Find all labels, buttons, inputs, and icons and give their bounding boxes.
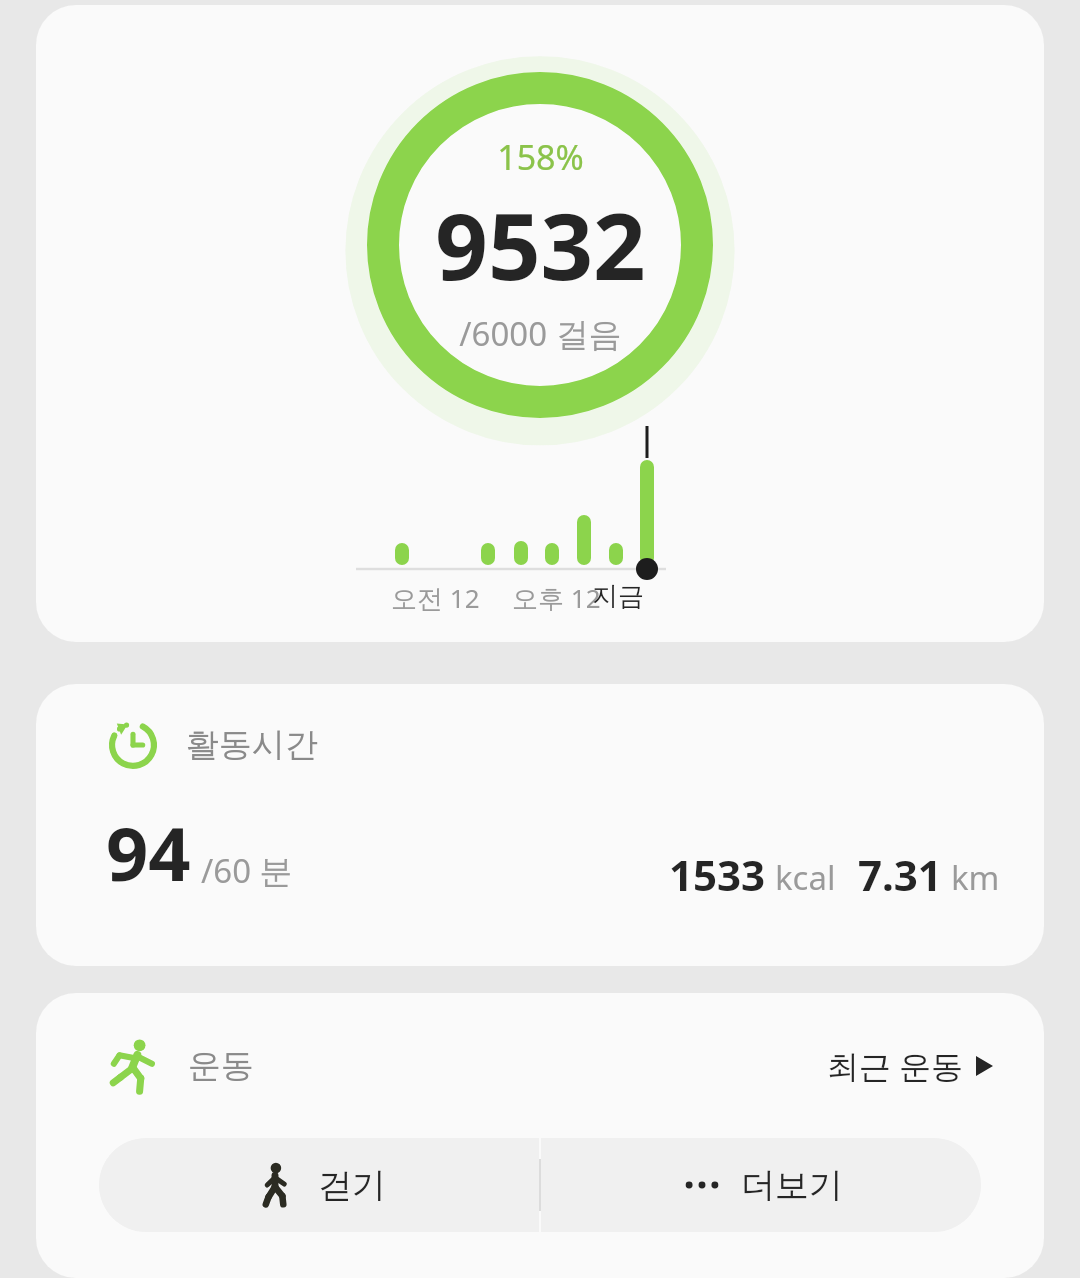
staticText: 7.31 xyxy=(858,846,942,903)
staticText: 최근 운동 xyxy=(827,1044,964,1088)
staticText: 지금 xyxy=(592,580,644,613)
staticText: 오후 12 xyxy=(512,580,601,616)
other: 걷기 xyxy=(252,1162,298,1208)
button[interactable]: 활동시간 xyxy=(36,684,1044,966)
staticText: 9532 xyxy=(435,182,646,307)
staticText: /60 분 xyxy=(201,848,293,893)
staticText: 활동시간 xyxy=(186,724,318,766)
staticText: kcal xyxy=(775,855,836,900)
staticText: 1533 xyxy=(669,846,766,903)
button[interactable]: 더보기 xyxy=(541,1138,981,1232)
staticText: 94 xyxy=(106,802,191,903)
staticText: 158% xyxy=(497,134,584,180)
staticText: 걷기 xyxy=(318,1164,386,1207)
staticText: 더보기 xyxy=(741,1164,843,1207)
staticText: km xyxy=(951,855,1000,900)
button[interactable]: 158% xyxy=(36,5,1044,642)
staticText: 운동 xyxy=(188,1045,254,1087)
button[interactable]: 최근 운동 xyxy=(823,1038,1000,1094)
staticText: 오전 12 xyxy=(391,580,480,616)
staticText: /6000 걸음 xyxy=(459,311,622,356)
button[interactable]: 걷기 xyxy=(99,1138,539,1232)
other: 운동 xyxy=(106,1038,162,1094)
